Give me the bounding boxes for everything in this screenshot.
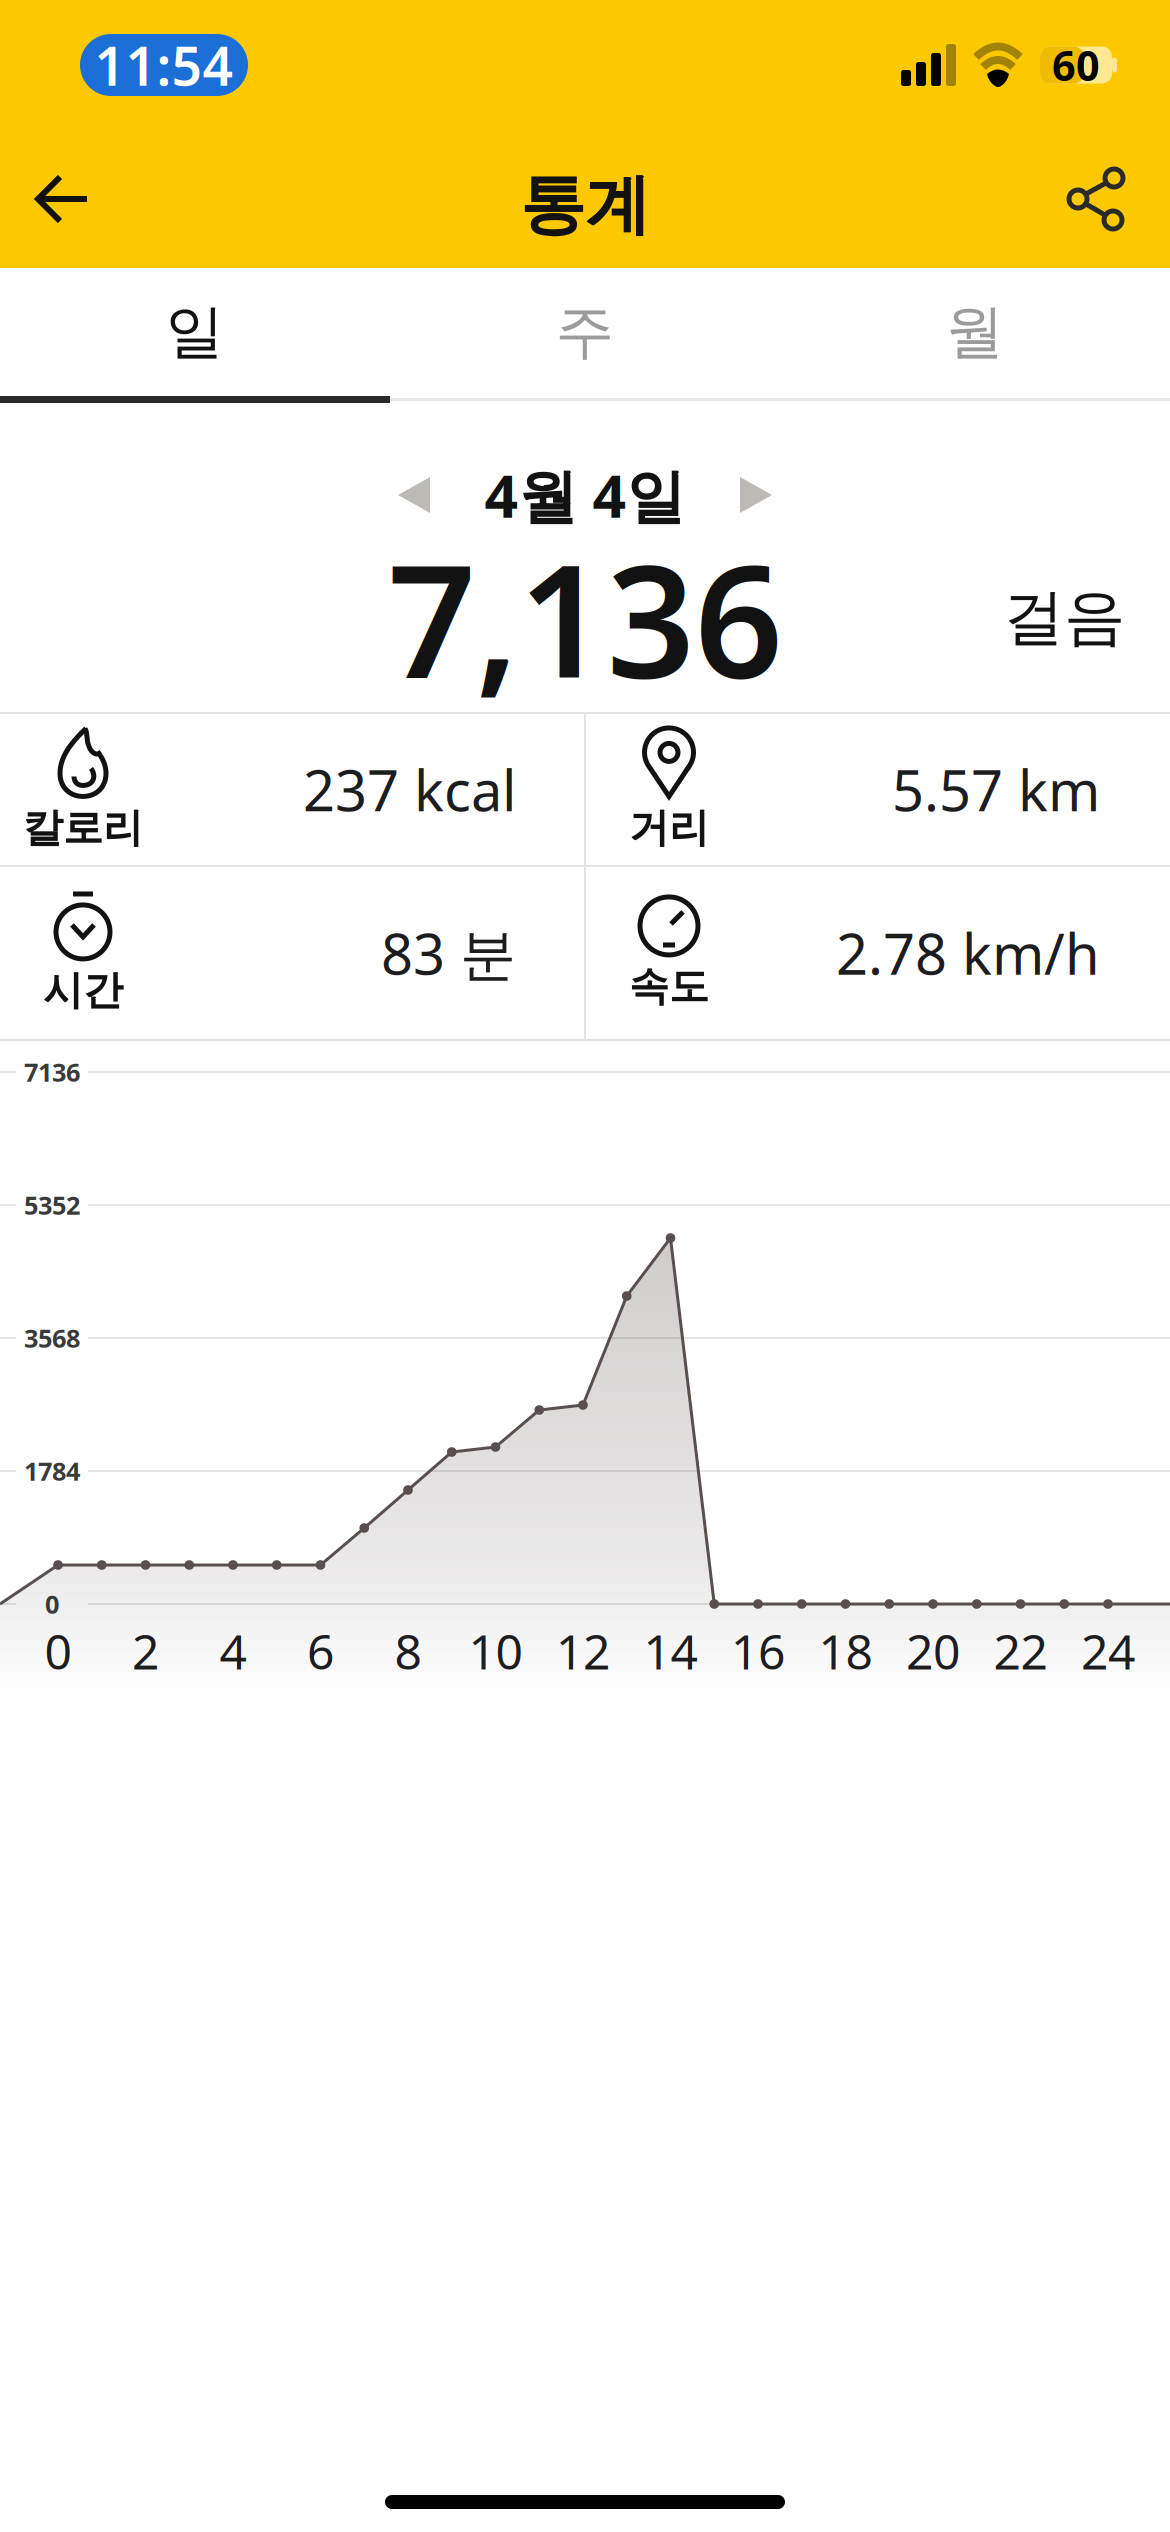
staticText: 8 [394,1619,421,1683]
staticText: 0 [44,1619,71,1683]
staticText: 6 [307,1619,334,1683]
staticText: 4월 4일 [484,456,685,534]
staticText: 4 [219,1619,246,1683]
staticText: 20 [906,1619,960,1683]
staticText: 2.78 km/h [836,916,1100,990]
button[interactable]: 일 [0,268,390,396]
button[interactable]: Previous day [398,455,430,535]
staticText: 월 [945,296,1004,368]
staticText: 주 [555,296,614,368]
staticText: 2 [132,1619,159,1683]
staticText: 시간 [43,966,123,1015]
staticText: 16 [731,1619,785,1683]
staticText: 0 [45,1587,59,1621]
staticText: 7136 [24,1055,80,1089]
staticText: 통계 [520,165,650,245]
staticText: 14 [643,1619,697,1683]
staticText: 10 [468,1619,522,1683]
staticText: 거리 [629,803,709,852]
staticText: 237 kcal [303,752,516,827]
button[interactable]: 주 [390,268,780,396]
button[interactable]: 월 [780,268,1170,396]
staticText: 18 [818,1619,872,1683]
staticText: 60 [1052,38,1100,92]
staticText: 1784 [24,1454,80,1488]
staticText: 5.57 km [892,752,1100,827]
staticText: 5352 [24,1188,80,1222]
staticText: 일 [165,296,224,368]
staticText: 속도 [629,962,709,1011]
button[interactable]: Share [1067,134,1170,264]
staticText: 22 [993,1619,1047,1683]
staticText: 걸음 [1003,580,1125,655]
staticText: 7,136 [387,515,782,720]
staticText: 11:54 [94,30,233,100]
button[interactable]: Back [0,136,90,262]
staticText: 24 [1081,1619,1135,1683]
staticText: 12 [556,1619,610,1683]
staticText: 칼로리 [23,803,143,852]
staticText: 83 분 [381,916,516,990]
staticText: 3568 [24,1321,80,1355]
button[interactable]: Next day [740,455,772,535]
